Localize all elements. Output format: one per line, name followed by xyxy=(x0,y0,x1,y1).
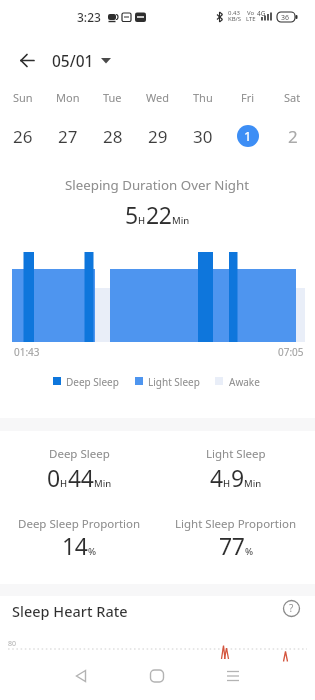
staticText: 4G xyxy=(257,9,266,18)
staticText: Deep Sleep Proportion xyxy=(18,516,141,532)
staticText: 77 xyxy=(219,530,245,561)
staticText: Light Sleep Proportion xyxy=(175,516,297,532)
staticText: Fri xyxy=(241,90,255,105)
staticText: 30 xyxy=(193,125,213,147)
staticText: Tue xyxy=(103,90,122,105)
staticText: H xyxy=(138,214,146,227)
staticText: 22 xyxy=(146,199,172,230)
button[interactable] xyxy=(195,658,271,694)
button[interactable] xyxy=(43,658,119,694)
staticText: Sun xyxy=(13,90,33,105)
staticText: 14 xyxy=(62,530,88,561)
button[interactable]: Sat xyxy=(270,90,315,147)
button[interactable]: Sun xyxy=(0,90,45,147)
staticText: 9 xyxy=(231,462,244,493)
staticText: 4 xyxy=(210,462,223,493)
staticText: 36 xyxy=(281,13,290,23)
staticText: Sat xyxy=(284,90,301,105)
staticText: Vo xyxy=(247,9,255,17)
staticText: ? xyxy=(289,601,294,615)
button[interactable] xyxy=(12,50,44,72)
staticText: 80 xyxy=(8,639,17,649)
staticText: 28 xyxy=(103,125,123,147)
staticText: 0.43 xyxy=(228,9,240,17)
staticText: H xyxy=(60,477,68,490)
staticText: Deep Sleep xyxy=(49,446,110,462)
staticText: Min xyxy=(94,477,112,490)
button[interactable]: Mon xyxy=(45,90,90,147)
staticText: 26 xyxy=(13,125,33,147)
staticText: 44 xyxy=(68,462,94,493)
button[interactable]: Wed xyxy=(135,90,180,147)
button[interactable]: 05/01 xyxy=(52,50,116,72)
staticText: 01:43 xyxy=(14,345,40,359)
staticText: Awake xyxy=(229,375,260,389)
button[interactable]: Thu xyxy=(180,90,225,147)
button[interactable]: Tue xyxy=(90,90,135,147)
staticText: Mon xyxy=(56,90,80,105)
staticText: Thu xyxy=(193,90,213,105)
staticText: 0 xyxy=(47,462,60,493)
staticText: 5 xyxy=(125,199,138,230)
staticText: Min xyxy=(244,477,262,490)
staticText: Sleeping Duration Over Night xyxy=(65,176,250,194)
staticText: % xyxy=(88,545,97,558)
staticText: 3:23 xyxy=(77,9,101,25)
staticText: 07:05 xyxy=(278,345,304,359)
staticText: 27 xyxy=(58,125,78,147)
staticText: Sleep Heart Rate xyxy=(12,601,128,621)
staticText: Light Sleep xyxy=(206,446,266,462)
button[interactable]: Fri xyxy=(225,90,270,147)
staticText: Light Sleep xyxy=(148,375,200,389)
staticText: 1 xyxy=(244,127,252,145)
staticText: Deep Sleep xyxy=(66,375,119,389)
staticText: H xyxy=(223,477,231,490)
staticText: % xyxy=(245,545,254,558)
staticText: Wed xyxy=(146,90,169,105)
staticText: 05/01 xyxy=(52,50,94,71)
staticText: 2 xyxy=(288,125,298,147)
staticText: LTE xyxy=(246,15,256,23)
button[interactable] xyxy=(119,658,195,694)
staticText: KB/S xyxy=(228,15,242,23)
staticText: Min xyxy=(172,214,190,227)
button[interactable]: ? xyxy=(281,598,301,618)
staticText: 29 xyxy=(148,125,168,147)
